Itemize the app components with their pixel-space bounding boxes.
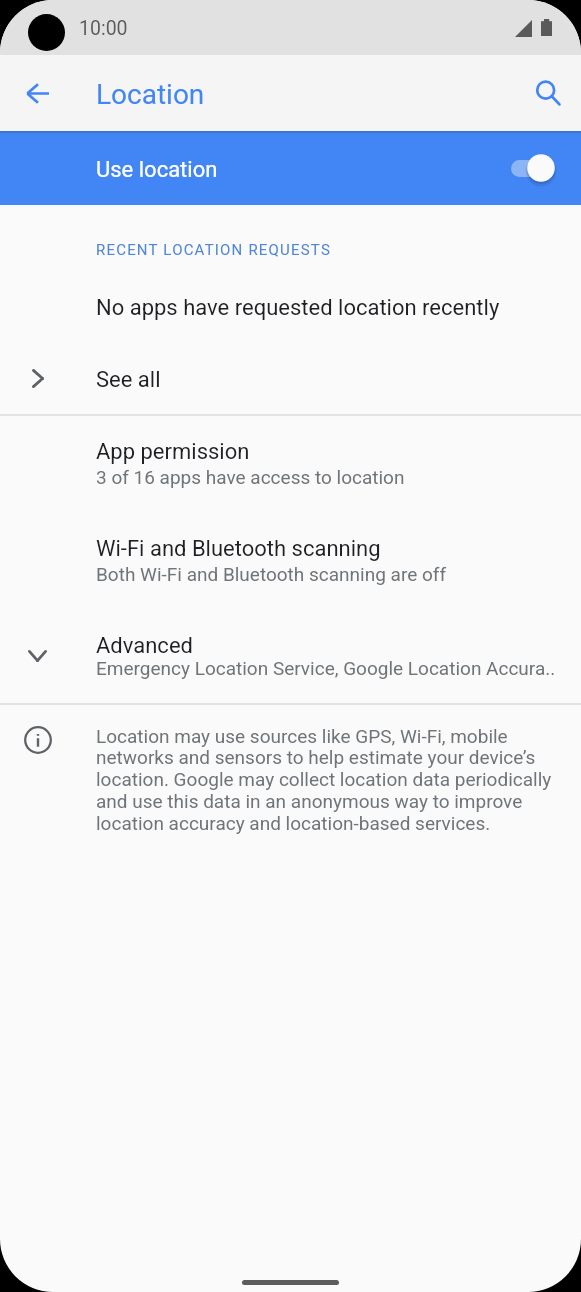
button[interactable]: Navigate up (14, 70, 60, 116)
button[interactable]: App permission (0, 421, 581, 493)
staticText: Emergency Location Service, Google Locat… (96, 657, 556, 679)
staticText: RECENT LOCATION REQUESTS (96, 241, 332, 259)
button[interactable]: No apps have requested location recently (0, 272, 581, 338)
staticText: 3 of 16 apps have access to location (96, 466, 405, 488)
staticText: Location may use sources like GPS, Wi-Fi… (96, 725, 560, 835)
staticText: Both Wi-Fi and Bluetooth scanning are of… (96, 563, 446, 585)
button[interactable]: Use location (0, 131, 581, 205)
staticText: Location (96, 78, 205, 111)
button[interactable]: Wi-Fi and Bluetooth scanning (0, 518, 581, 590)
staticText: 10:00 (79, 17, 128, 40)
button[interactable]: See all (0, 345, 581, 413)
button[interactable]: Home (242, 1280, 339, 1285)
staticText: Wi-Fi and Bluetooth scanning (96, 536, 381, 562)
staticText: See all (96, 367, 161, 393)
staticText: Use location (96, 157, 218, 183)
staticText: App permission (96, 439, 250, 465)
staticText: Advanced (96, 633, 193, 659)
button[interactable]: Search settings (525, 70, 571, 116)
button[interactable]: Advanced (0, 615, 581, 687)
staticText: No apps have requested location recently (96, 295, 500, 321)
